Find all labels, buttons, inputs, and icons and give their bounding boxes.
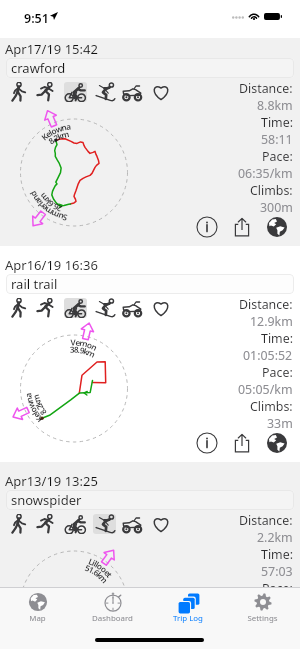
staticText: rail trail [11, 275, 58, 293]
staticText: Pace: [262, 364, 293, 381]
button[interactable]: Run [33, 514, 56, 534]
staticText: 05:05/km [238, 381, 293, 398]
staticText: snowspider [11, 491, 82, 509]
staticText: 01:05:52 [243, 347, 293, 364]
staticText: Distance: [239, 80, 293, 97]
staticText: 57:03 [261, 563, 293, 580]
staticText: Apr13/19 13:25 [5, 472, 98, 490]
button[interactable]: Run [33, 82, 56, 102]
button[interactable]: Show on map [266, 216, 288, 238]
button[interactable]: ATV [120, 298, 143, 318]
staticText: Time: [261, 330, 293, 347]
button[interactable]: Favourite [149, 514, 172, 534]
staticText: Climbs: [250, 597, 293, 614]
button[interactable]: ATV [120, 82, 143, 102]
button[interactable]: Favourite [149, 82, 172, 102]
staticText: crawford [11, 59, 66, 77]
staticText: Climbs: [250, 182, 293, 199]
staticText: Apr16/19 16:36 [5, 256, 98, 274]
button[interactable]: Info [196, 432, 218, 454]
staticText: 06:35/km [238, 165, 293, 182]
staticText: 8.8km [257, 97, 293, 114]
staticText: Distance: [239, 512, 293, 529]
button[interactable]: Walk [6, 298, 29, 318]
staticText: 58:11 [261, 131, 293, 148]
button[interactable]: Show on map [266, 432, 288, 454]
button[interactable]: Bike [64, 298, 87, 318]
button[interactable]: Dashboard [75, 588, 150, 633]
button[interactable]: Info [196, 216, 218, 238]
button[interactable]: Run [33, 298, 56, 318]
button[interactable]: Ski [93, 514, 116, 534]
button[interactable]: Trip Log [150, 588, 225, 633]
button[interactable]: Ski [93, 298, 116, 318]
staticText: 12.9km [250, 313, 293, 330]
staticText: Map [29, 613, 46, 624]
button[interactable]: Settings [225, 588, 300, 633]
button[interactable]: Favourite [149, 298, 172, 318]
staticText: 33m [267, 415, 293, 432]
staticText: 300m [260, 199, 293, 216]
staticText: Pace: [262, 148, 293, 165]
staticText: Apr17/19 15:42 [5, 40, 98, 58]
button[interactable]: Apr16/19 16:36 [0, 246, 300, 462]
button[interactable]: snowspider [6, 490, 294, 510]
button[interactable]: crawford [6, 58, 294, 78]
staticText: Time: [261, 114, 293, 131]
button[interactable]: Walk [6, 82, 29, 102]
staticText: Climbs: [250, 398, 293, 415]
staticText: Trip Log [173, 613, 203, 624]
staticText: Dashboard [92, 613, 133, 624]
staticText: 2.2km [257, 529, 293, 546]
button[interactable]: Map [0, 588, 75, 633]
staticText: Distance: [239, 296, 293, 313]
button[interactable]: Bike [64, 82, 87, 102]
staticText: Settings [247, 613, 278, 624]
button[interactable]: rail trail [6, 274, 294, 294]
button[interactable]: Bike [64, 514, 87, 534]
button[interactable]: Walk [6, 514, 29, 534]
staticText: Pace: [262, 580, 293, 597]
button[interactable]: Ski [93, 82, 116, 102]
button[interactable]: Apr17/19 15:42 [0, 38, 300, 246]
button[interactable]: Share [231, 432, 253, 454]
staticText: Time: [261, 546, 293, 563]
staticText: 9:51 [24, 10, 49, 27]
button[interactable]: Apr13/19 13:25 [0, 462, 300, 618]
button[interactable]: Share [231, 216, 253, 238]
button[interactable]: ATV [120, 514, 143, 534]
